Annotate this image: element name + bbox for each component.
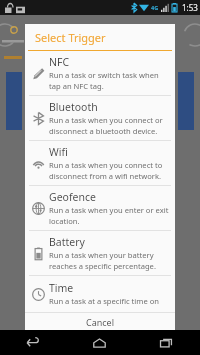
staticText: Geofence (49, 190, 96, 204)
staticText: Run a task when you connect to or (49, 160, 171, 170)
staticText: 4G (151, 4, 159, 11)
staticText: tap an NFC tag. (49, 81, 104, 91)
button[interactable]: Cancel (25, 313, 175, 330)
staticText: Bluetooth (49, 100, 98, 114)
staticText: NFC (49, 55, 70, 69)
staticText: Select Trigger (35, 30, 106, 45)
button[interactable]: Home (66, 330, 133, 355)
staticText: Battery (49, 235, 85, 249)
button[interactable]: Recent apps (133, 330, 200, 355)
staticText: Cancel (86, 316, 115, 328)
button[interactable]: Geofence (25, 186, 175, 230)
staticText: Run a task or switch task when you (49, 70, 171, 80)
staticText: Run a task at a specific time on one (49, 296, 171, 306)
staticText: Run a task when you connect or (49, 115, 163, 125)
staticText: Time (49, 281, 74, 295)
staticText: 1:53 (182, 2, 198, 13)
staticText: reaches a specific percentage. (49, 261, 156, 271)
staticText: disconnect a bluetooth device. (49, 126, 158, 136)
staticText: disconnect from a wifi network. (49, 171, 162, 181)
staticText: location. (49, 216, 80, 226)
button[interactable]: Back (0, 330, 66, 355)
button[interactable]: Time (25, 276, 175, 312)
button[interactable]: Battery (25, 231, 175, 275)
button[interactable]: Bluetooth (25, 96, 175, 140)
button[interactable]: Wifi (25, 141, 175, 185)
staticText: Wifi (49, 145, 68, 159)
staticText: Run a task when you enter or exit a (49, 205, 171, 215)
button[interactable]: NFC (25, 51, 175, 95)
staticText: Run a task when your battery (49, 250, 154, 260)
